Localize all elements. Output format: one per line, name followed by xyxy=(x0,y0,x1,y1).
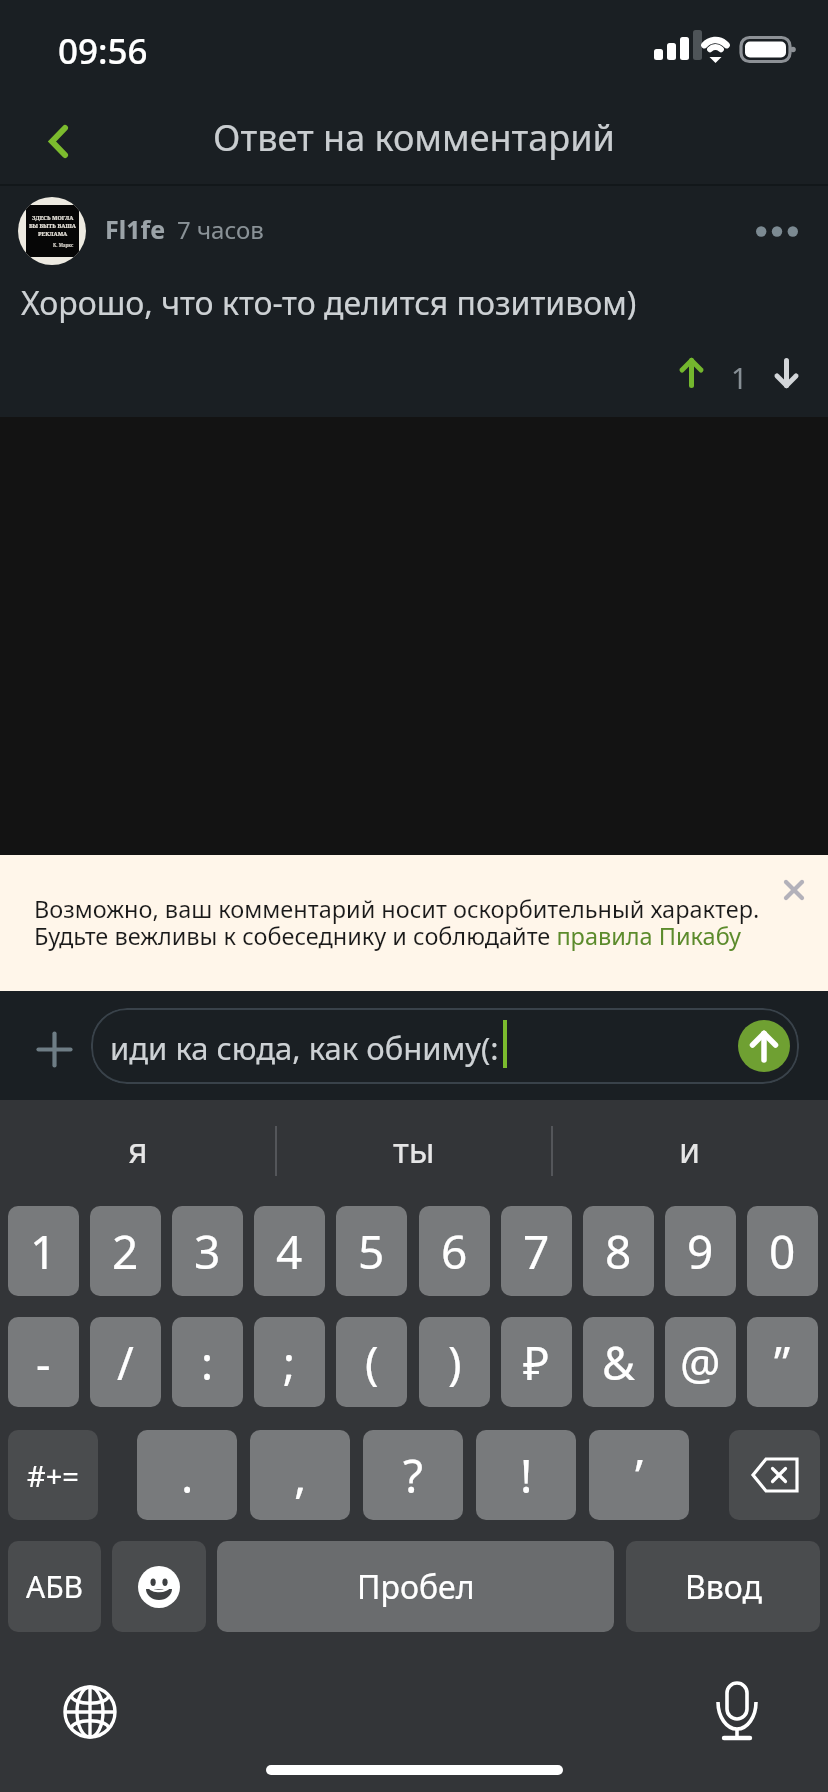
button[interactable]: Emoji xyxy=(112,1541,206,1632)
staticText: 6 xyxy=(441,1220,468,1283)
staticText: я xyxy=(128,1127,148,1173)
staticText: ? xyxy=(403,1444,423,1507)
button[interactable]: Upvote xyxy=(659,341,723,405)
staticText: / xyxy=(117,1332,134,1393)
staticText: 1 xyxy=(30,1220,57,1283)
button[interactable]: User avatar xyxy=(18,197,86,265)
staticText: и xyxy=(679,1127,701,1173)
staticText: Будьте вежливы к собеседнику и соблюдайт… xyxy=(34,920,741,952)
staticText: ₽ xyxy=(523,1332,550,1393)
button[interactable]: @ xyxy=(665,1317,736,1407)
button[interactable]: Backspace xyxy=(729,1430,820,1520)
button[interactable]: Change keyboard xyxy=(60,1682,120,1742)
button[interactable]: Downvote xyxy=(754,341,818,405)
button[interactable]: АБВ xyxy=(8,1541,101,1632)
staticText: - xyxy=(36,1332,51,1393)
staticText: ” xyxy=(774,1332,791,1393)
button[interactable]: ! xyxy=(476,1430,576,1520)
staticText: Возможно, ваш комментарий носит оскорбит… xyxy=(34,893,760,925)
staticText: 1 xyxy=(731,358,748,397)
button[interactable]: 1 xyxy=(8,1206,79,1296)
button[interactable]: 9 xyxy=(665,1206,736,1296)
staticText: 7 часов xyxy=(177,213,264,246)
staticText: ! xyxy=(520,1444,533,1507)
staticText: К. Маркс xyxy=(53,242,74,248)
staticText: Ввод xyxy=(685,1565,762,1609)
staticText: Ответ на комментарий xyxy=(0,113,828,162)
staticText: ЗДЕСЬ МОГЛА xyxy=(32,214,74,222)
staticText: : xyxy=(201,1332,214,1393)
button[interactable]: : xyxy=(172,1317,243,1407)
button[interactable]: 5 xyxy=(336,1206,407,1296)
button[interactable]: More options xyxy=(737,201,817,261)
staticText: 3 xyxy=(194,1220,221,1283)
button[interactable]: Send xyxy=(738,1020,790,1072)
button[interactable]: ( xyxy=(336,1317,407,1407)
staticText: Хорошо, что кто-то делится позитивом) xyxy=(21,281,637,325)
button[interactable]: ? xyxy=(363,1430,463,1520)
staticText: @ xyxy=(680,1332,721,1393)
button[interactable]: 2 xyxy=(90,1206,161,1296)
button[interactable]: Ввод xyxy=(626,1541,820,1632)
button[interactable]: ты xyxy=(276,1100,552,1200)
button[interactable]: . xyxy=(137,1430,237,1520)
button[interactable]: ’ xyxy=(589,1430,689,1520)
button[interactable]: , xyxy=(250,1430,350,1520)
button[interactable]: 3 xyxy=(172,1206,243,1296)
button[interactable]: / xyxy=(90,1317,161,1407)
button[interactable]: ; xyxy=(254,1317,325,1407)
staticText: , xyxy=(294,1444,307,1507)
button[interactable]: иди ка сюда, как обниму(: xyxy=(91,1008,799,1084)
staticText: 0 xyxy=(769,1220,796,1283)
staticText: & xyxy=(602,1332,635,1393)
button[interactable]: ) xyxy=(419,1317,490,1407)
button[interactable]: и xyxy=(552,1100,828,1200)
staticText: ’ xyxy=(635,1444,644,1507)
button[interactable]: 4 xyxy=(254,1206,325,1296)
button[interactable]: Пробел xyxy=(217,1541,614,1632)
staticText: . xyxy=(181,1444,194,1507)
button[interactable]: #+= xyxy=(8,1430,98,1520)
staticText: ) xyxy=(448,1332,462,1393)
staticText: 09:56 xyxy=(58,27,148,75)
button[interactable]: ” xyxy=(747,1317,818,1407)
staticText: БЫ БЫТЬ ВАША xyxy=(29,222,77,230)
staticText: ; xyxy=(283,1332,296,1393)
button[interactable]: я xyxy=(0,1100,276,1200)
button[interactable]: ₽ xyxy=(501,1317,572,1407)
button[interactable]: 7 xyxy=(501,1206,572,1296)
button[interactable]: Close xyxy=(764,860,824,920)
staticText: ты xyxy=(393,1127,435,1173)
button[interactable]: - xyxy=(8,1317,79,1407)
staticText: 2 xyxy=(112,1220,139,1283)
button[interactable]: 8 xyxy=(583,1206,654,1296)
button[interactable]: & xyxy=(583,1317,654,1407)
staticText: 5 xyxy=(358,1220,385,1283)
button[interactable]: 0 xyxy=(747,1206,818,1296)
staticText: Fl1fe xyxy=(105,212,166,246)
staticText: 9 xyxy=(687,1220,714,1283)
staticText: 8 xyxy=(605,1220,632,1283)
staticText: ( xyxy=(365,1332,379,1393)
button[interactable]: Add attachment xyxy=(24,1019,84,1079)
staticText: АБВ xyxy=(26,1566,84,1607)
button[interactable]: Back xyxy=(21,104,95,178)
staticText: #+= xyxy=(27,1456,79,1495)
button[interactable]: Voice input xyxy=(707,1681,767,1741)
staticText: РЕКЛАМА xyxy=(38,230,68,238)
staticText: Пробел xyxy=(357,1565,475,1609)
staticText: иди ка сюда, как обниму(: xyxy=(110,1027,499,1069)
staticText: 4 xyxy=(276,1220,303,1283)
button[interactable]: 6 xyxy=(419,1206,490,1296)
staticText: 7 xyxy=(523,1220,550,1283)
